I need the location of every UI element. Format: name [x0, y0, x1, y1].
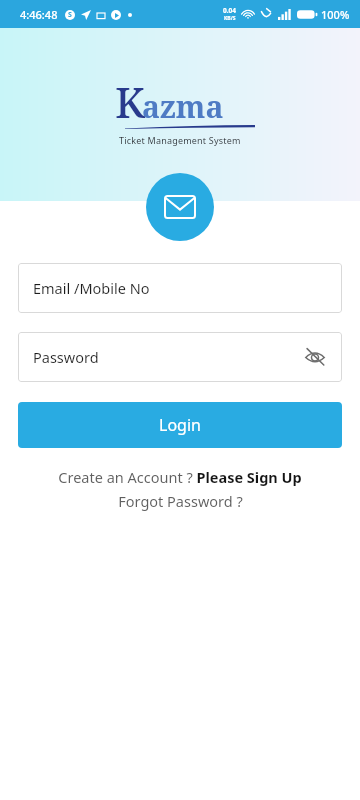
staticText: Create an Account ? Please Sign Up [58, 467, 302, 487]
staticText: azma [142, 86, 224, 127]
button[interactable]: Password [18, 332, 342, 382]
staticText: KB/S [224, 15, 236, 22]
staticText: 100% [321, 7, 350, 22]
staticText: Forgot Password ? [118, 491, 243, 511]
staticText: S [68, 10, 72, 20]
staticText: Ticket Management System [119, 134, 241, 146]
button[interactable]: Show password [300, 342, 330, 372]
staticText: Password [33, 347, 99, 367]
button[interactable]: Create an Account ? Please Sign Up [52, 466, 308, 488]
staticText: Email /Mobile No [33, 278, 150, 298]
button[interactable]: Login [18, 402, 342, 448]
staticText: Login [159, 414, 201, 436]
button[interactable]: Forgot Password ? [112, 490, 249, 512]
button[interactable]: Email /Mobile No [18, 263, 342, 313]
staticText: K [115, 73, 145, 130]
staticText: 4:46:48 [20, 7, 58, 22]
staticText: 0.04 [223, 6, 236, 15]
button[interactable]: Email login [146, 173, 214, 241]
